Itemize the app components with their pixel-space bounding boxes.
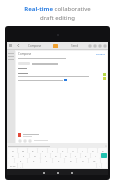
staticText: v <box>58 159 60 162</box>
button[interactable]: h <box>61 153 70 158</box>
staticText: b <box>70 159 72 162</box>
staticText: i <box>82 149 83 152</box>
button[interactable]: y <box>58 148 67 153</box>
staticText: q <box>12 149 14 152</box>
button[interactable]: q <box>8 148 17 153</box>
staticText: p <box>102 149 104 152</box>
staticText: m <box>93 159 96 162</box>
button[interactable]: ?123 <box>8 163 17 168</box>
button[interactable]: v <box>53 158 64 163</box>
button[interactable]: k <box>81 153 90 158</box>
button[interactable]: Back <box>16 43 21 48</box>
staticText: n <box>82 159 84 162</box>
staticText: f <box>45 154 46 157</box>
staticText: w <box>22 149 24 152</box>
staticText: x <box>33 159 35 162</box>
staticText: ?123 <box>10 164 16 167</box>
staticText: j <box>75 154 76 157</box>
button[interactable]: t <box>48 148 57 153</box>
staticText: a <box>12 154 14 157</box>
button[interactable]: Discard <box>96 52 105 55</box>
button[interactable]: m <box>89 158 100 163</box>
button[interactable]: a <box>8 153 18 158</box>
button[interactable]: j <box>71 153 80 158</box>
button[interactable]: p <box>98 148 107 153</box>
staticText: t <box>52 149 53 152</box>
button[interactable]: f <box>41 153 50 158</box>
button[interactable]: e <box>28 148 37 153</box>
button[interactable]: b <box>65 158 76 163</box>
button[interactable]: n <box>77 158 88 163</box>
button[interactable]: Attach <box>23 139 27 143</box>
staticText: Real-time collaborative <box>24 5 91 13</box>
staticText: l <box>95 154 96 157</box>
button[interactable]: l <box>91 153 100 158</box>
staticText: y <box>62 149 64 152</box>
button[interactable]: r <box>38 148 47 153</box>
button[interactable]: Menu <box>7 42 14 49</box>
staticText: . <box>99 164 100 167</box>
button[interactable]: Recent apps <box>69 170 74 175</box>
button[interactable]: Enter <box>101 153 107 158</box>
button[interactable]: c <box>41 158 52 163</box>
staticText: u <box>72 149 74 152</box>
button[interactable]: u <box>68 148 77 153</box>
button[interactable]: g <box>51 153 60 158</box>
staticText: d <box>34 154 36 157</box>
button[interactable]: Home <box>55 170 60 175</box>
staticText: c <box>46 159 48 162</box>
button[interactable]: Back <box>41 170 46 175</box>
button[interactable]: Action <box>102 43 107 48</box>
button[interactable]: o <box>88 148 97 153</box>
staticText: Discard <box>96 52 105 55</box>
staticText: s <box>23 154 25 157</box>
staticText: Compose <box>28 44 42 48</box>
button[interactable]: d <box>30 153 40 158</box>
button[interactable]: s <box>19 153 29 158</box>
staticText: k <box>85 154 87 157</box>
staticText: g <box>55 154 57 157</box>
staticText: h <box>65 154 67 157</box>
button[interactable]: x <box>28 158 40 163</box>
button[interactable]: Action <box>97 43 102 48</box>
button[interactable]: z <box>15 158 27 163</box>
button[interactable]: w <box>18 148 27 153</box>
staticText: e <box>32 149 34 152</box>
staticText: Compose <box>18 52 32 56</box>
button[interactable]: Action <box>92 43 97 48</box>
button[interactable]: Account <box>53 44 58 48</box>
staticText: Send <box>71 44 79 48</box>
button[interactable]: Attach <box>18 139 22 143</box>
button[interactable]: i <box>78 148 87 153</box>
staticText: draft editing <box>40 14 75 22</box>
staticText: r <box>42 149 44 152</box>
staticText: o <box>92 149 94 152</box>
button[interactable]: Attach <box>28 139 32 143</box>
button[interactable]: Action <box>87 43 92 48</box>
staticText: z <box>20 159 22 162</box>
